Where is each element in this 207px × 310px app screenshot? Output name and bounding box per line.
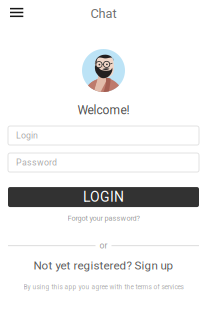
button[interactable]: Login: [8, 126, 199, 145]
staticText: LOGIN: [83, 189, 124, 205]
staticText: or: [99, 241, 107, 251]
staticText: By using this app you agree with the ter…: [23, 283, 183, 291]
staticText: Forgot your password?: [67, 214, 139, 223]
button[interactable]: Forgot your password?: [67, 212, 139, 225]
button[interactable]: Menu: [8, 3, 31, 24]
staticText: Welcome!: [77, 103, 129, 117]
staticText: Chat: [90, 6, 116, 21]
staticText: Not yet registered? Sign up: [33, 259, 173, 272]
button[interactable]: LOGIN: [8, 187, 199, 207]
button[interactable]: Password: [8, 153, 199, 172]
staticText: Password: [16, 157, 57, 168]
staticText: Login: [16, 130, 38, 141]
button[interactable]: Not yet registered? Sign up: [33, 257, 173, 274]
